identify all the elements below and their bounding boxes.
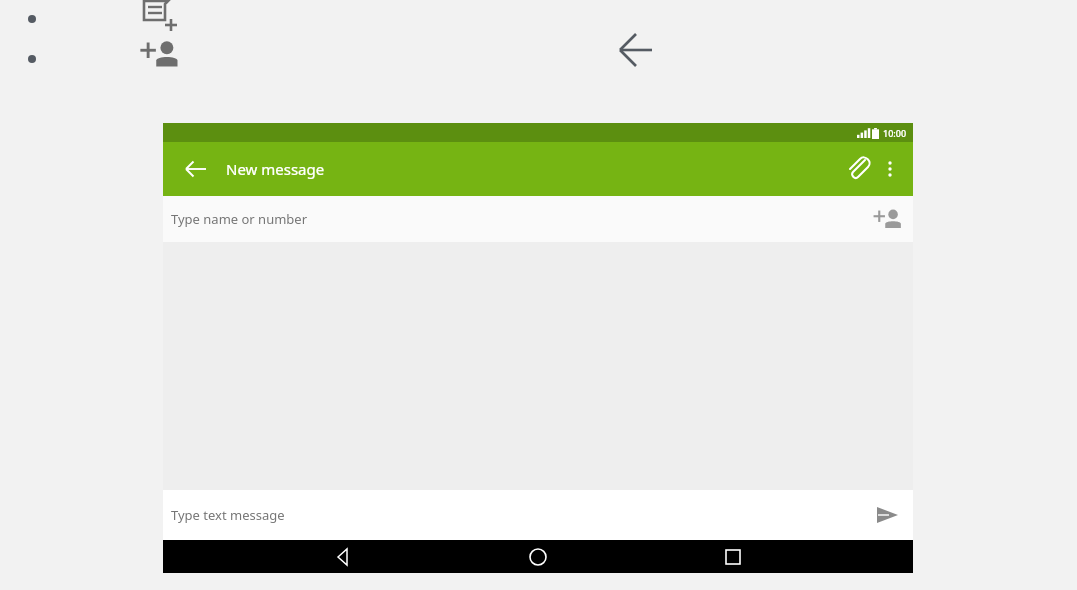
button[interactable]: Back [610,24,662,76]
button[interactable]: Send [871,499,903,531]
button[interactable]: Back [328,542,358,572]
button[interactable]: Home [523,542,553,572]
button[interactable]: Type name or number [163,196,913,242]
button[interactable]: Type text message [163,490,913,540]
button[interactable]: More options [875,154,905,184]
button[interactable]: Navigate up [178,151,214,187]
button[interactable]: Recent apps [718,542,748,572]
button[interactable]: New message [140,0,180,31]
button[interactable]: Add recipient [873,204,903,234]
button[interactable]: Add person [140,38,180,70]
staticText: 10:00 [883,127,907,139]
staticText: Type text message [171,506,285,524]
staticText: New message [226,159,325,179]
staticText: Type name or number [171,210,308,228]
button[interactable]: Attach [841,152,875,186]
